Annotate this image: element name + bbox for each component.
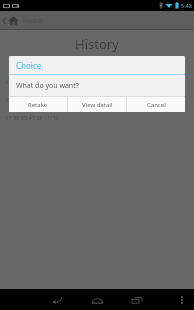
button[interactable]: 07-30 05:47:38 - 1/10 [0, 108, 194, 126]
button[interactable]: More options [175, 293, 189, 307]
staticText: Cancel [147, 101, 166, 109]
button[interactable]: View detail [68, 97, 126, 112]
button[interactable]: Recent apps [128, 291, 146, 309]
button[interactable]: Home [88, 291, 106, 309]
staticText: Home [23, 16, 43, 26]
staticText: 07-29 10:17:01 - Incomplete [5, 78, 77, 85]
staticText: View detail [82, 101, 113, 109]
button[interactable]: Cancel [127, 97, 185, 112]
staticText: 07-30 05:47:33 - Incomplete [5, 96, 77, 103]
staticText: 07-30 05:47:38 - 1/10 [5, 114, 59, 121]
button[interactable]: Retake [9, 97, 67, 112]
button[interactable]: 07-30 05:47:33 - Incomplete [0, 90, 194, 108]
button[interactable]: 07-29 10:17:01 - Incomplete [0, 72, 194, 90]
staticText: Retake [28, 101, 48, 109]
staticText: What do you want? [16, 81, 79, 91]
staticText: Choice [16, 60, 42, 71]
staticText: 5:48 [181, 2, 192, 9]
staticText: History [75, 35, 119, 53]
button[interactable]: Home [0, 11, 49, 30]
button[interactable]: Back [48, 291, 66, 309]
